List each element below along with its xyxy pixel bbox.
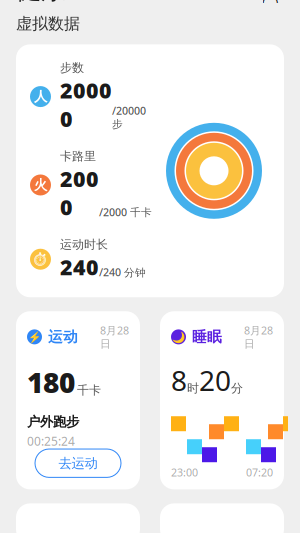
staticText: 虚拟数据 [16,14,80,33]
staticText: 火 [34,177,47,193]
staticText: 20000 [60,76,112,133]
staticText: 8月28日 [100,323,129,350]
button[interactable]: ⚡ [16,311,140,489]
staticText: 去运动 [58,455,97,471]
staticText: /20000 步 [112,103,146,131]
staticText: ⚡ [28,331,41,343]
staticText: 睡眠 [192,328,222,346]
staticText: 分 [231,381,243,396]
staticText: 步数 [60,60,84,75]
button[interactable]: 耳机 [256,0,284,4]
staticText: 运动时长 [60,237,108,252]
staticText: 人 [34,88,47,105]
staticText: 千卡 [77,383,101,398]
staticText: 8月28日 [244,323,273,350]
staticText: 23:00 [171,465,198,479]
staticText: 20 [199,361,231,399]
staticText: 00:25:24 [27,433,75,449]
button[interactable]: 🌙 [160,311,284,489]
button[interactable]: 人 [16,44,284,297]
staticText: 🌙 [172,331,185,343]
staticText: 户外跑步 [27,414,79,430]
staticText: 健康 [16,0,66,6]
staticText: 240 [60,253,99,281]
staticText: 8 [171,361,187,399]
staticText: 时 [187,381,199,396]
staticText: /240 分钟 [99,265,146,279]
staticText: 2000 [60,164,99,221]
staticText: /2000 千卡 [99,205,152,219]
staticText: 卡路里 [60,149,96,163]
staticText: 运动 [48,328,78,346]
staticText: ⏱ [32,252,49,267]
staticText: ◠◠ [261,0,278,13]
staticText: 07:20 [246,465,273,479]
staticText: 180 [27,363,75,401]
